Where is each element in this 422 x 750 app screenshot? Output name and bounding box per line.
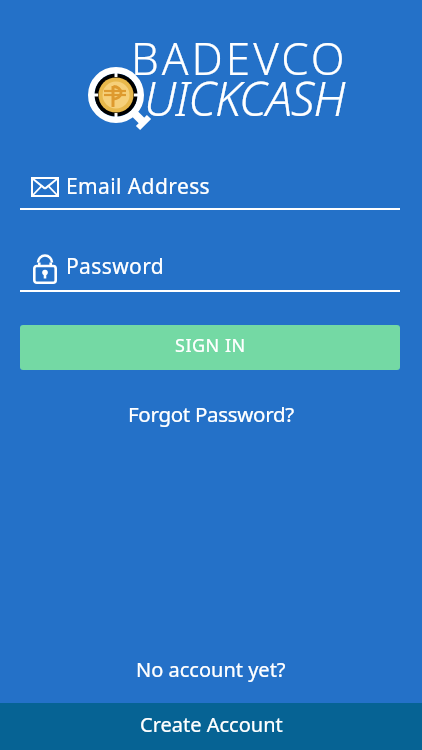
staticText: BADEVCO	[131, 28, 348, 88]
button[interactable]: SIGN IN	[20, 325, 400, 370]
staticText: Forgot Password?	[128, 400, 294, 428]
button[interactable]: Password	[20, 244, 402, 288]
staticText: Email Address	[66, 172, 211, 201]
button[interactable]: Email Address	[20, 164, 402, 208]
staticText: SIGN IN	[175, 333, 246, 358]
staticText: Password	[66, 252, 165, 281]
staticText: No account yet?	[136, 656, 286, 683]
staticText: UICKCASH	[144, 66, 345, 130]
button[interactable]: Forgot Password?	[0, 394, 422, 434]
staticText: Create Account	[140, 711, 283, 738]
button[interactable]: Create Account	[0, 703, 422, 750]
